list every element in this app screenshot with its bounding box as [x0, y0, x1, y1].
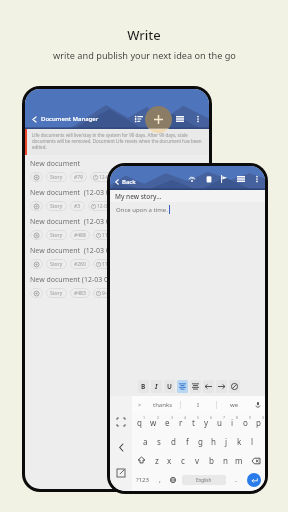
button[interactable]: y [200, 413, 213, 432]
button[interactable]: c [176, 451, 190, 470]
staticText: a [143, 436, 148, 447]
button[interactable] [190, 380, 201, 393]
staticText: I [197, 401, 200, 409]
button[interactable]: Settings [30, 288, 43, 298]
button[interactable] [177, 380, 188, 393]
button[interactable]: Story [46, 172, 67, 182]
button[interactable]: B [138, 380, 149, 393]
button[interactable]: Back [114, 178, 136, 186]
button[interactable]: #79 [70, 172, 87, 182]
button[interactable]: thanks [145, 401, 180, 409]
staticText: x [167, 455, 172, 466]
button[interactable]: Edit [115, 467, 127, 479]
button[interactable]: q [132, 413, 146, 432]
button[interactable]: d [166, 432, 180, 451]
button[interactable]: #260 [70, 259, 90, 269]
button[interactable]: 11-01 [93, 230, 119, 240]
button[interactable]: s [152, 432, 166, 451]
button[interactable]: w [146, 413, 160, 432]
button[interactable]: 12-03 [90, 172, 116, 182]
button[interactable] [229, 380, 240, 393]
button[interactable]: ?123 [132, 470, 153, 489]
button[interactable]: #3 [70, 201, 85, 211]
button[interactable]: x [163, 451, 176, 470]
button[interactable]: Language [166, 470, 179, 489]
button[interactable]: we [217, 401, 252, 409]
button[interactable]: 12-03 [88, 201, 114, 211]
button[interactable]: 11-01 [93, 259, 119, 269]
button[interactable]: 9-07 [93, 288, 116, 298]
staticText: New document [30, 159, 81, 169]
button[interactable]: u [213, 413, 226, 432]
button[interactable]: Voice input [252, 402, 263, 408]
button[interactable]: f [180, 432, 194, 451]
button[interactable]: Story [46, 230, 67, 240]
staticText: 12-03 [99, 174, 113, 181]
staticText: > [138, 401, 142, 408]
button[interactable]: h [207, 432, 220, 451]
staticText: c [181, 455, 185, 466]
button[interactable]: Settings [30, 259, 43, 269]
button[interactable]: g [194, 432, 207, 451]
button[interactable]: New document (12-03 01:42:59) [25, 245, 209, 274]
button[interactable]: U [164, 380, 175, 393]
staticText: Write [127, 26, 161, 44]
button[interactable]: #488 [70, 230, 90, 240]
button[interactable]: l [246, 432, 259, 451]
button[interactable]: Document Manager [31, 115, 99, 123]
button[interactable]: i [226, 413, 239, 432]
button[interactable]: . [229, 470, 242, 489]
button[interactable]: Backspace [246, 451, 265, 470]
button[interactable]: New document [145, 106, 172, 133]
button[interactable]: n [218, 451, 232, 470]
button[interactable]: Publish [186, 173, 197, 184]
button[interactable]: More options [191, 112, 204, 125]
button[interactable]: t [187, 413, 200, 432]
button[interactable]: j [220, 432, 233, 451]
button[interactable]: p [252, 413, 265, 432]
button[interactable]: English [182, 475, 226, 485]
button[interactable]: I [181, 401, 216, 409]
staticText: l [251, 436, 254, 447]
button[interactable]: m [232, 451, 246, 470]
staticText: m [235, 455, 243, 466]
button[interactable]: New document [25, 158, 209, 187]
button[interactable]: New document (12-03 01:43:15) [25, 216, 209, 245]
button[interactable]: a [138, 432, 152, 451]
button[interactable] [216, 380, 227, 393]
staticText: Story [50, 232, 63, 239]
button[interactable]: k [233, 432, 246, 451]
staticText: 5 [197, 415, 200, 420]
button[interactable]: New document (12-03 01:43:01) [25, 274, 209, 303]
button[interactable]: Sort [132, 112, 145, 125]
button[interactable]: #483 [70, 288, 90, 298]
button[interactable]: Save [203, 173, 214, 184]
button[interactable]: v [190, 451, 204, 470]
button[interactable]: Undo [218, 173, 229, 184]
button[interactable]: Story [46, 259, 67, 269]
button[interactable]: b [204, 451, 218, 470]
button[interactable]: , [153, 470, 166, 489]
button[interactable]: r [174, 413, 187, 432]
button[interactable]: Filter [173, 112, 186, 125]
button[interactable]: o [239, 413, 252, 432]
button[interactable]: I [151, 380, 162, 393]
button[interactable]: Settings [30, 172, 43, 182]
button[interactable]: More suggestions [134, 401, 145, 408]
button[interactable] [203, 380, 214, 393]
staticText: y [204, 417, 209, 428]
button[interactable]: Enter [247, 473, 261, 487]
button[interactable]: Resize keyboard [115, 416, 127, 428]
button[interactable]: Settings [30, 201, 43, 211]
button[interactable]: z [150, 451, 163, 470]
button[interactable]: Story [46, 201, 67, 211]
button[interactable]: e [160, 413, 174, 432]
button[interactable]: Back [115, 441, 127, 453]
button[interactable]: Settings [30, 230, 43, 240]
button[interactable]: Story [46, 288, 67, 298]
button[interactable]: More options [251, 173, 262, 184]
button[interactable]: Menu [235, 173, 246, 184]
staticText: f [186, 436, 189, 447]
button[interactable]: New document (12-03 01:43:21) [25, 187, 209, 216]
button[interactable]: Shift [132, 451, 150, 470]
